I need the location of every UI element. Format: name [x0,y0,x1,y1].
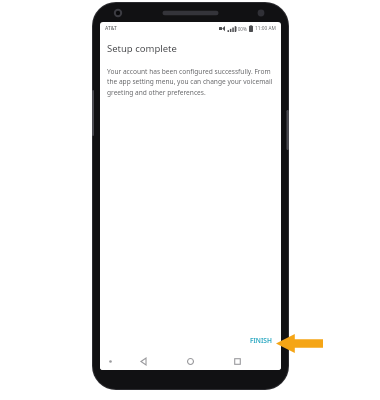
other: Pointer arrow [276,334,323,353]
button[interactable]: FINISH [241,332,281,349]
button[interactable]: Keyboard switcher [100,353,120,370]
staticText: Your account has been configured success… [107,67,274,97]
staticText: 11:00 AM [255,25,276,32]
staticText: FINISH [250,336,272,345]
button[interactable]: Back [120,353,167,370]
staticText: 100% [235,26,247,32]
button[interactable]: Recent apps [214,353,261,370]
staticText: AT&T [105,25,117,32]
button[interactable]: Home [167,353,214,370]
staticText: Setup complete [107,42,177,55]
